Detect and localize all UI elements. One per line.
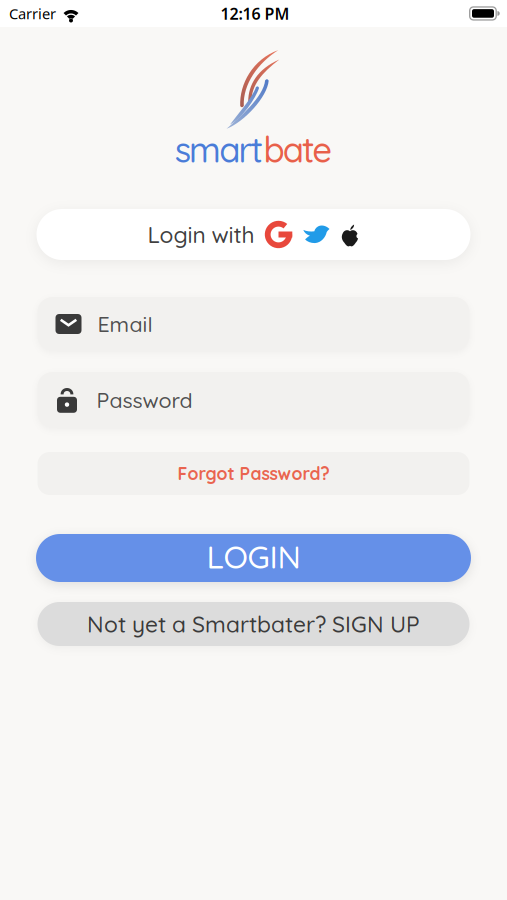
staticText: Password [96, 387, 192, 413]
button[interactable]: Email [37, 297, 469, 351]
staticText: bate [264, 128, 332, 171]
staticText: Email [97, 311, 152, 337]
button[interactable]: LOGIN [36, 534, 471, 582]
staticText: smart [175, 128, 264, 171]
staticText: Login with [147, 220, 254, 249]
staticText: Not yet a Smartbater? SIGN UP [87, 610, 420, 638]
staticText: Carrier [9, 4, 56, 23]
staticText: Forgot Password? [177, 462, 329, 484]
button[interactable]: Login with [36, 209, 470, 260]
button[interactable]: Password [37, 372, 469, 428]
staticText: LOGIN [206, 536, 300, 576]
staticText: 12:16 PM [220, 3, 289, 24]
button[interactable]: Forgot Password? [37, 452, 469, 495]
button[interactable]: Not yet a Smartbater? SIGN UP [37, 602, 469, 646]
